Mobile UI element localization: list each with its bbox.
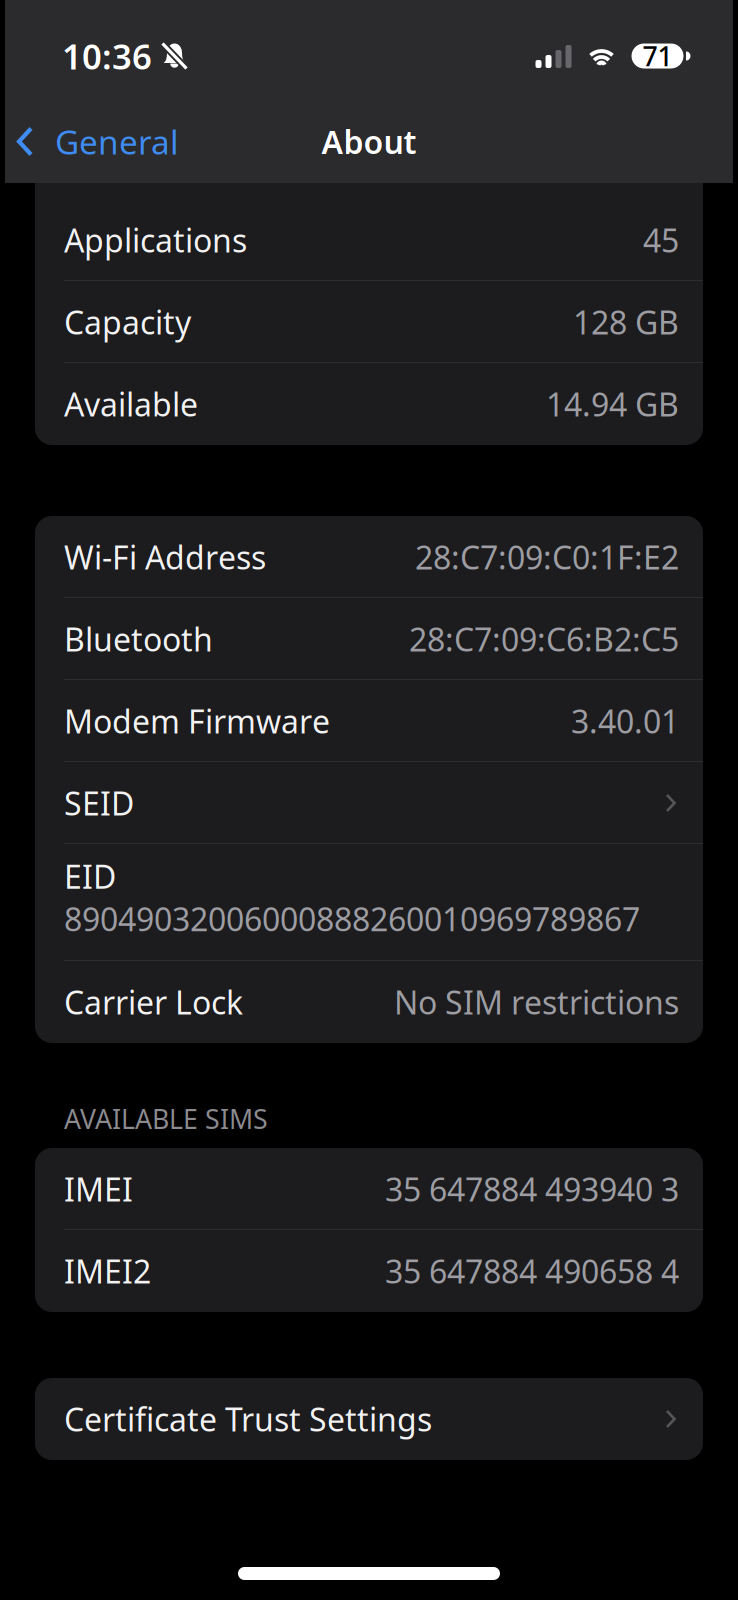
button[interactable]: EID	[35, 844, 703, 961]
staticText: 28:C7:09:C0:1F:E2	[415, 536, 679, 578]
staticText: Bluetooth	[64, 618, 213, 660]
staticText: 14.94 GB	[546, 383, 679, 425]
staticText: SEID	[64, 782, 134, 824]
staticText: Available	[64, 383, 198, 425]
staticText: 71	[642, 38, 672, 74]
button[interactable]: Applications	[35, 199, 703, 281]
staticText: Capacity	[64, 301, 191, 343]
staticText: 35 647884 490658 4	[385, 1250, 679, 1292]
staticText: 28:C7:09:C6:B2:C5	[409, 618, 679, 660]
staticText: Applications	[64, 219, 247, 261]
staticText: General	[55, 119, 179, 164]
button[interactable]: Carrier Lock	[35, 961, 703, 1043]
staticText: Modem Firmware	[64, 700, 330, 742]
button[interactable]: SEID	[35, 762, 703, 844]
button[interactable]: General	[0, 109, 179, 174]
button[interactable]: IMEI2	[35, 1230, 703, 1312]
staticText: 45	[643, 219, 679, 261]
staticText: 128 GB	[573, 301, 679, 343]
button[interactable]: Capacity	[35, 281, 703, 363]
staticText: 10:36	[62, 33, 152, 79]
button[interactable]: Certificate Trust Settings	[35, 1378, 703, 1460]
button[interactable]: Bluetooth	[35, 598, 703, 680]
staticText: IMEI	[64, 1168, 133, 1210]
staticText: About	[321, 120, 416, 163]
staticText: IMEI2	[64, 1250, 151, 1292]
button[interactable]: Modem Firmware	[35, 680, 703, 762]
button[interactable]: IMEI	[35, 1148, 703, 1230]
button[interactable]: Available	[35, 363, 703, 445]
staticText: AVAILABLE SIMS	[64, 1101, 268, 1136]
staticText: Carrier Lock	[64, 981, 243, 1023]
staticText: EID	[64, 855, 116, 897]
button[interactable]: Wi-Fi Address	[35, 516, 703, 598]
staticText: 35 647884 493940 3	[385, 1168, 679, 1210]
staticText: Wi-Fi Address	[64, 536, 266, 578]
staticText: No SIM restrictions	[394, 981, 679, 1023]
staticText: 89049032006000888260010969789867	[64, 897, 640, 940]
staticText: Certificate Trust Settings	[64, 1398, 432, 1440]
staticText: 3.40.01	[571, 700, 679, 742]
